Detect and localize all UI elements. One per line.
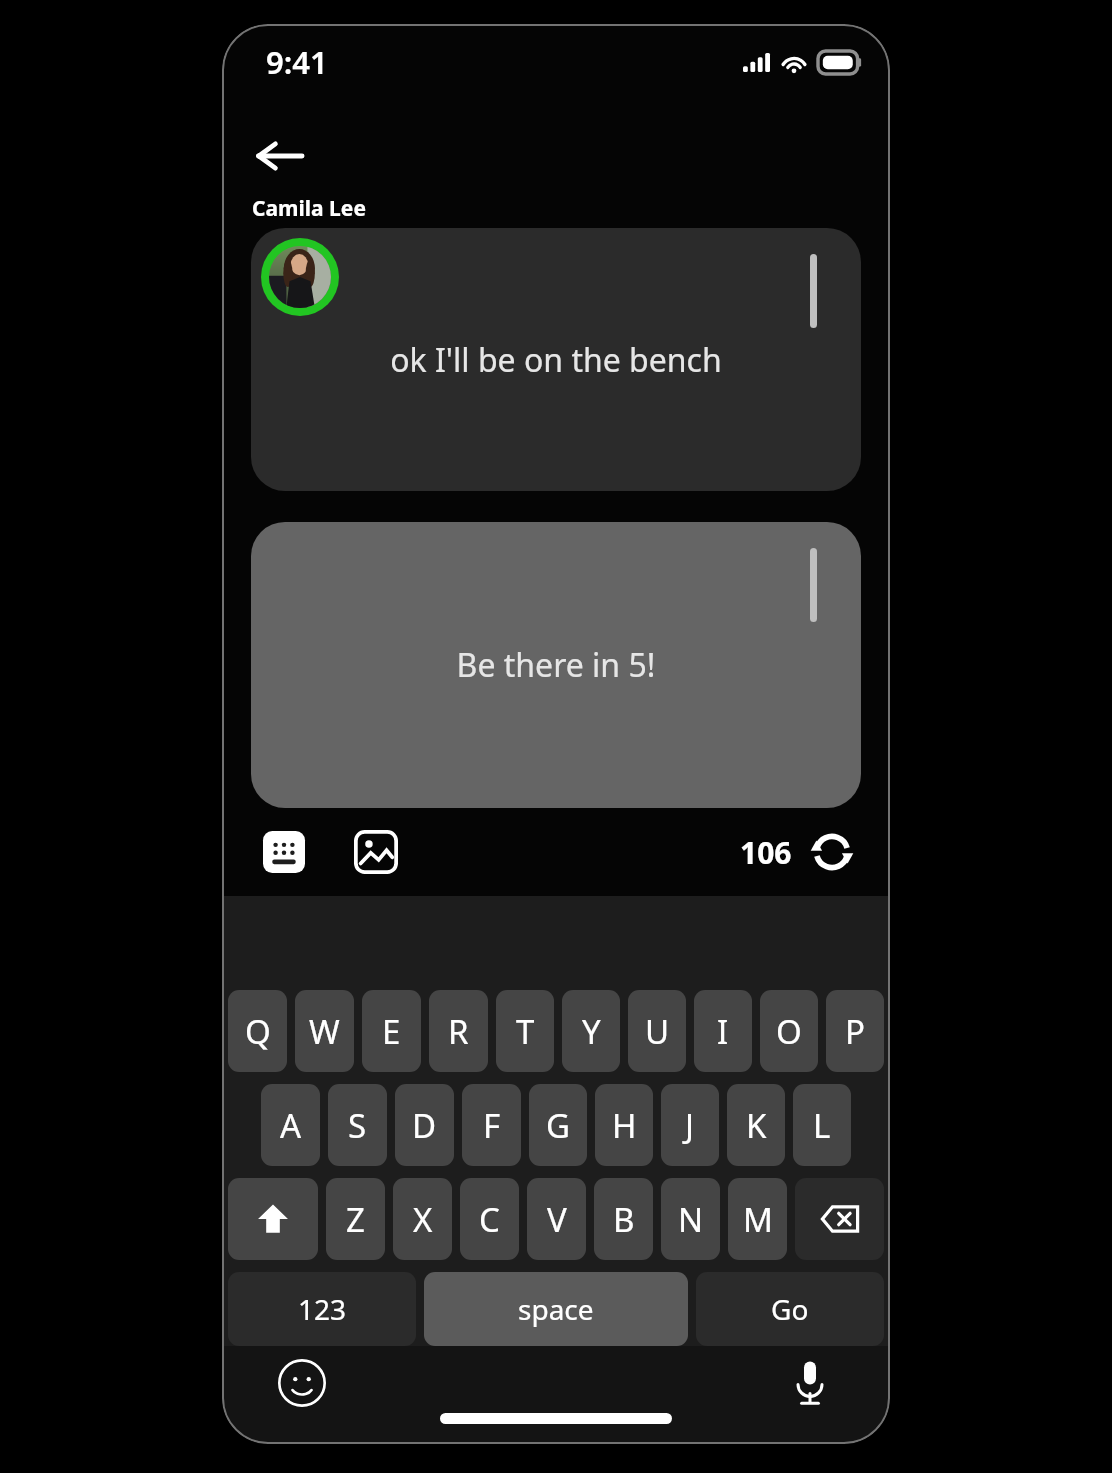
button[interactable]: space (424, 1272, 688, 1346)
button[interactable]: O (760, 990, 818, 1072)
staticText: A (280, 1103, 302, 1148)
button[interactable]: K (727, 1084, 785, 1166)
staticText: Go (771, 1290, 809, 1328)
button[interactable]: W (295, 990, 354, 1072)
staticText: N (678, 1197, 704, 1242)
button[interactable]: R (429, 990, 488, 1072)
staticText: G (546, 1103, 571, 1148)
staticText: O (776, 1009, 802, 1054)
button[interactable]: X (393, 1178, 452, 1260)
button[interactable]: L (793, 1084, 851, 1166)
button[interactable]: Backspace (795, 1178, 884, 1260)
button[interactable]: I (694, 990, 752, 1072)
button[interactable]: H (595, 1084, 653, 1166)
button[interactable]: C (460, 1178, 519, 1260)
staticText: 106 (740, 832, 792, 873)
button[interactable]: N (661, 1178, 720, 1260)
staticText: D (412, 1103, 437, 1148)
staticText: F (483, 1103, 501, 1148)
staticText: W (309, 1009, 340, 1054)
staticText: U (645, 1009, 670, 1054)
staticText: 9:41 (266, 41, 328, 83)
button[interactable]: S (328, 1084, 387, 1166)
staticText: Z (346, 1197, 365, 1242)
staticText: L (813, 1103, 831, 1148)
staticText: V (547, 1197, 567, 1242)
staticText: space (518, 1290, 594, 1328)
button[interactable]: E (362, 990, 421, 1072)
button[interactable]: Z (326, 1178, 385, 1260)
button[interactable]: Photo (344, 820, 408, 884)
staticText: E (382, 1009, 401, 1054)
staticText: J (685, 1103, 695, 1148)
staticText: S (348, 1103, 367, 1148)
staticText: R (448, 1009, 469, 1054)
staticText: B (613, 1197, 635, 1242)
button[interactable]: J (661, 1084, 719, 1166)
button[interactable]: 123 (228, 1272, 416, 1346)
button[interactable]: Keyboard (252, 820, 316, 884)
staticText: I (717, 1009, 729, 1054)
button[interactable]: F (462, 1084, 521, 1166)
staticText: Y (582, 1009, 601, 1054)
button[interactable]: Shift (228, 1178, 318, 1260)
staticText: Camila Lee (252, 194, 366, 223)
staticText: K (746, 1103, 767, 1148)
button[interactable]: B (594, 1178, 653, 1260)
button[interactable]: Be there in 5! (251, 522, 861, 808)
button[interactable]: Sync (802, 822, 862, 882)
staticText: T (516, 1009, 535, 1054)
button[interactable]: V (527, 1178, 586, 1260)
button[interactable]: Y (562, 990, 620, 1072)
staticText: M (743, 1197, 773, 1242)
staticText: 123 (298, 1290, 347, 1328)
staticText: Be there in 5! (271, 643, 841, 687)
button[interactable]: Go (696, 1272, 884, 1346)
staticText: P (845, 1009, 865, 1054)
button[interactable]: Back (244, 120, 316, 192)
button[interactable]: G (529, 1084, 587, 1166)
staticText: X (413, 1197, 433, 1242)
button[interactable]: Q (228, 990, 287, 1072)
staticText: C (479, 1197, 500, 1242)
button[interactable]: A (261, 1084, 320, 1166)
button[interactable]: D (395, 1084, 454, 1166)
button[interactable]: P (826, 990, 884, 1072)
staticText: ok I'll be on the bench (271, 338, 841, 382)
button[interactable]: Emoji (270, 1351, 334, 1415)
button[interactable]: Voice input (778, 1351, 842, 1415)
button[interactable]: T (496, 990, 554, 1072)
staticText: H (612, 1103, 637, 1148)
button[interactable]: U (628, 990, 686, 1072)
button[interactable]: ok I'll be on the bench (251, 228, 861, 491)
staticText: Q (245, 1009, 271, 1054)
button[interactable]: M (728, 1178, 787, 1260)
